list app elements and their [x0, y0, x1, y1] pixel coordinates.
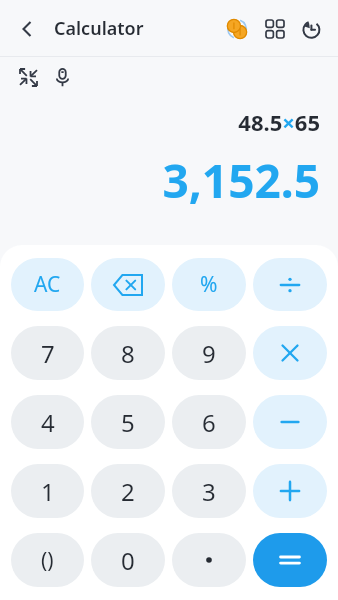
- button[interactable]: Parentheses: [11, 533, 84, 587]
- staticText: 3: [202, 475, 216, 508]
- button[interactable]: Plus: [253, 464, 327, 518]
- button[interactable]: Voice input: [45, 60, 79, 94]
- button[interactable]: AC: [11, 258, 84, 311]
- button[interactable]: 1: [11, 464, 84, 518]
- button[interactable]: Divide: [253, 258, 327, 311]
- staticText: 7: [41, 337, 55, 370]
- staticText: 8: [121, 337, 135, 370]
- staticText: Calculator: [54, 16, 144, 41]
- button[interactable]: 2: [91, 464, 165, 518]
- staticText: 48.5×65: [238, 107, 320, 137]
- button[interactable]: 9: [172, 326, 246, 380]
- button[interactable]: Unit converters: [258, 12, 292, 46]
- button[interactable]: 7: [11, 326, 84, 380]
- button[interactable]: Decimal point: [172, 533, 246, 587]
- button[interactable]: 5: [91, 395, 165, 449]
- staticText: 4: [41, 406, 55, 439]
- button[interactable]: Backspace: [91, 258, 165, 311]
- staticText: 1: [41, 475, 55, 508]
- button[interactable]: 8: [91, 326, 165, 380]
- staticText: 6: [202, 406, 216, 439]
- staticText: 9: [202, 337, 216, 370]
- staticText: 5: [121, 406, 135, 439]
- button[interactable]: 0: [91, 533, 165, 587]
- button[interactable]: 6: [172, 395, 246, 449]
- button[interactable]: Currency converter: [220, 12, 254, 46]
- button[interactable]: Multiply: [253, 326, 327, 380]
- button[interactable]: Minus: [253, 395, 327, 449]
- staticText: AC: [34, 270, 61, 299]
- staticText: 0: [121, 544, 135, 577]
- button[interactable]: 4: [11, 395, 84, 449]
- staticText: (): [41, 546, 54, 575]
- button[interactable]: %: [172, 258, 246, 311]
- button[interactable]: Back: [10, 12, 44, 46]
- staticText: 3,152.5: [162, 149, 320, 212]
- staticText: %: [200, 270, 218, 299]
- button[interactable]: Collapse: [11, 60, 45, 94]
- button[interactable]: History: [294, 12, 328, 46]
- button[interactable]: Equals: [253, 533, 327, 587]
- button[interactable]: 3: [172, 464, 246, 518]
- staticText: 2: [121, 475, 135, 508]
